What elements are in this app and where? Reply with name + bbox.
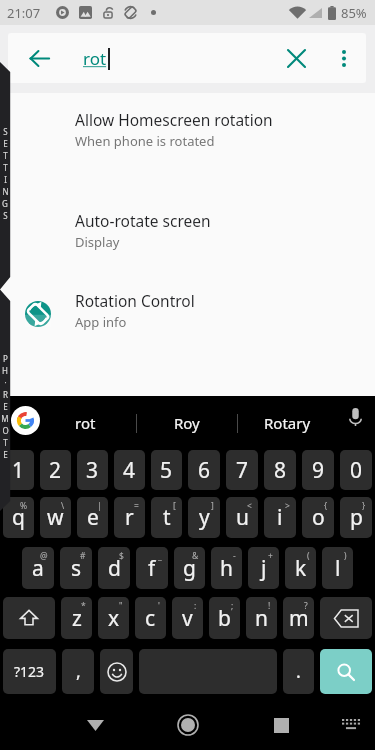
button[interactable]: i: [264, 497, 296, 538]
staticText: M: [1, 413, 9, 424]
staticText: <: [247, 500, 252, 512]
button[interactable]: Home: [164, 701, 212, 749]
staticText: n: [255, 604, 268, 633]
button[interactable]: 5: [151, 450, 182, 490]
button[interactable]: m: [283, 597, 314, 639]
button[interactable]: u: [226, 497, 258, 538]
staticText: Auto-rotate screen: [75, 210, 211, 231]
button[interactable]: More options: [326, 40, 362, 76]
button[interactable]: 9: [302, 450, 334, 490]
staticText: v: [182, 604, 193, 633]
button[interactable]: v: [172, 597, 203, 639]
staticText: 2: [49, 456, 62, 485]
staticText: ·: [4, 377, 7, 388]
button[interactable]: Rotation Control: [0, 282, 375, 338]
button[interactable]: t: [151, 497, 182, 538]
button[interactable]: emoji: [100, 649, 133, 694]
button[interactable]: a: [22, 547, 54, 589]
button[interactable]: 7: [226, 450, 258, 490]
staticText: T: [3, 437, 8, 448]
button[interactable]: j: [248, 547, 279, 589]
staticText: Rotary: [264, 413, 311, 433]
staticText: O: [2, 425, 9, 436]
staticText: 1: [12, 456, 25, 485]
button[interactable]: search: [320, 649, 372, 694]
button[interactable]: 1: [3, 450, 34, 490]
button[interactable]: Clear search: [276, 38, 316, 78]
button[interactable]: 2: [40, 450, 71, 490]
button[interactable]: o: [302, 497, 334, 538]
button[interactable]: k: [285, 547, 316, 589]
button[interactable]: d: [98, 547, 130, 589]
staticText: *: [81, 600, 86, 612]
staticText: s: [71, 554, 82, 583]
button[interactable]: Back: [71, 701, 119, 749]
staticText: I: [4, 174, 7, 185]
staticText: {: [324, 500, 328, 512]
button[interactable]: w: [40, 497, 71, 538]
staticText: 3: [86, 456, 99, 485]
button[interactable]: Allow Homescreen rotation: [0, 101, 375, 157]
staticText: 0: [350, 456, 363, 485]
button[interactable]: Rotary: [237, 396, 338, 450]
staticText: T: [3, 162, 8, 173]
button[interactable]: ?123: [3, 649, 56, 694]
button[interactable]: x: [98, 597, 129, 639]
staticText: %: [20, 500, 28, 512]
button[interactable]: 6: [188, 450, 220, 490]
staticText: 5: [160, 456, 173, 485]
button[interactable]: 8: [264, 450, 296, 490]
staticText: f: [148, 554, 156, 583]
staticText: When phone is rotated: [75, 132, 215, 150]
button[interactable]: Recent apps: [257, 701, 305, 749]
staticText: |: [97, 500, 102, 512]
button[interactable]: Voice input: [340, 402, 370, 432]
staticText: b: [218, 604, 231, 633]
button[interactable]: Google search: [11, 406, 40, 435]
button[interactable]: n: [246, 597, 277, 639]
button[interactable]: del: [320, 597, 372, 639]
staticText: p: [350, 503, 363, 532]
button[interactable]: .: [283, 649, 314, 694]
staticText: G: [2, 198, 8, 209]
staticText: E: [3, 138, 8, 149]
staticText: y: [199, 503, 210, 532]
staticText: rot: [83, 47, 107, 70]
button[interactable]: f: [136, 547, 168, 589]
staticText: j: [261, 554, 267, 583]
button[interactable]: 4: [114, 450, 145, 490]
staticText: m: [289, 604, 309, 633]
button[interactable]: 3: [77, 450, 108, 490]
button[interactable]: ,: [62, 649, 94, 694]
button[interactable]: Back: [19, 38, 59, 78]
button[interactable]: z: [61, 597, 92, 639]
button[interactable]: g: [174, 547, 205, 589]
staticText: N: [2, 186, 9, 197]
button[interactable]: l: [322, 547, 353, 589]
staticText: 85%: [341, 4, 367, 22]
button[interactable]: rot: [34, 396, 136, 450]
staticText: e: [87, 503, 99, 532]
button[interactable]: r: [114, 497, 145, 538]
button[interactable]: q: [3, 497, 34, 538]
staticText: c: [145, 604, 156, 633]
button[interactable]: c: [135, 597, 166, 639]
button[interactable]: s: [60, 547, 92, 589]
button[interactable]: p: [340, 497, 372, 538]
button[interactable]: 0: [340, 450, 372, 490]
button[interactable]: y: [188, 497, 220, 538]
staticText: ): [344, 550, 347, 562]
button[interactable]: Auto-rotate screen: [0, 202, 375, 258]
staticText: Rotation Control: [75, 290, 195, 311]
staticText: 9: [312, 456, 325, 485]
button[interactable]: shift: [3, 597, 55, 639]
staticText: $: [119, 550, 124, 562]
button[interactable]: Switch keyboard: [331, 704, 371, 744]
staticText: >: [285, 500, 290, 512]
button[interactable]: Roy: [136, 396, 237, 450]
button[interactable]: e: [77, 497, 108, 538]
button[interactable]: h: [211, 547, 242, 589]
staticText: t: [163, 503, 171, 532]
button[interactable]: b: [209, 597, 240, 639]
